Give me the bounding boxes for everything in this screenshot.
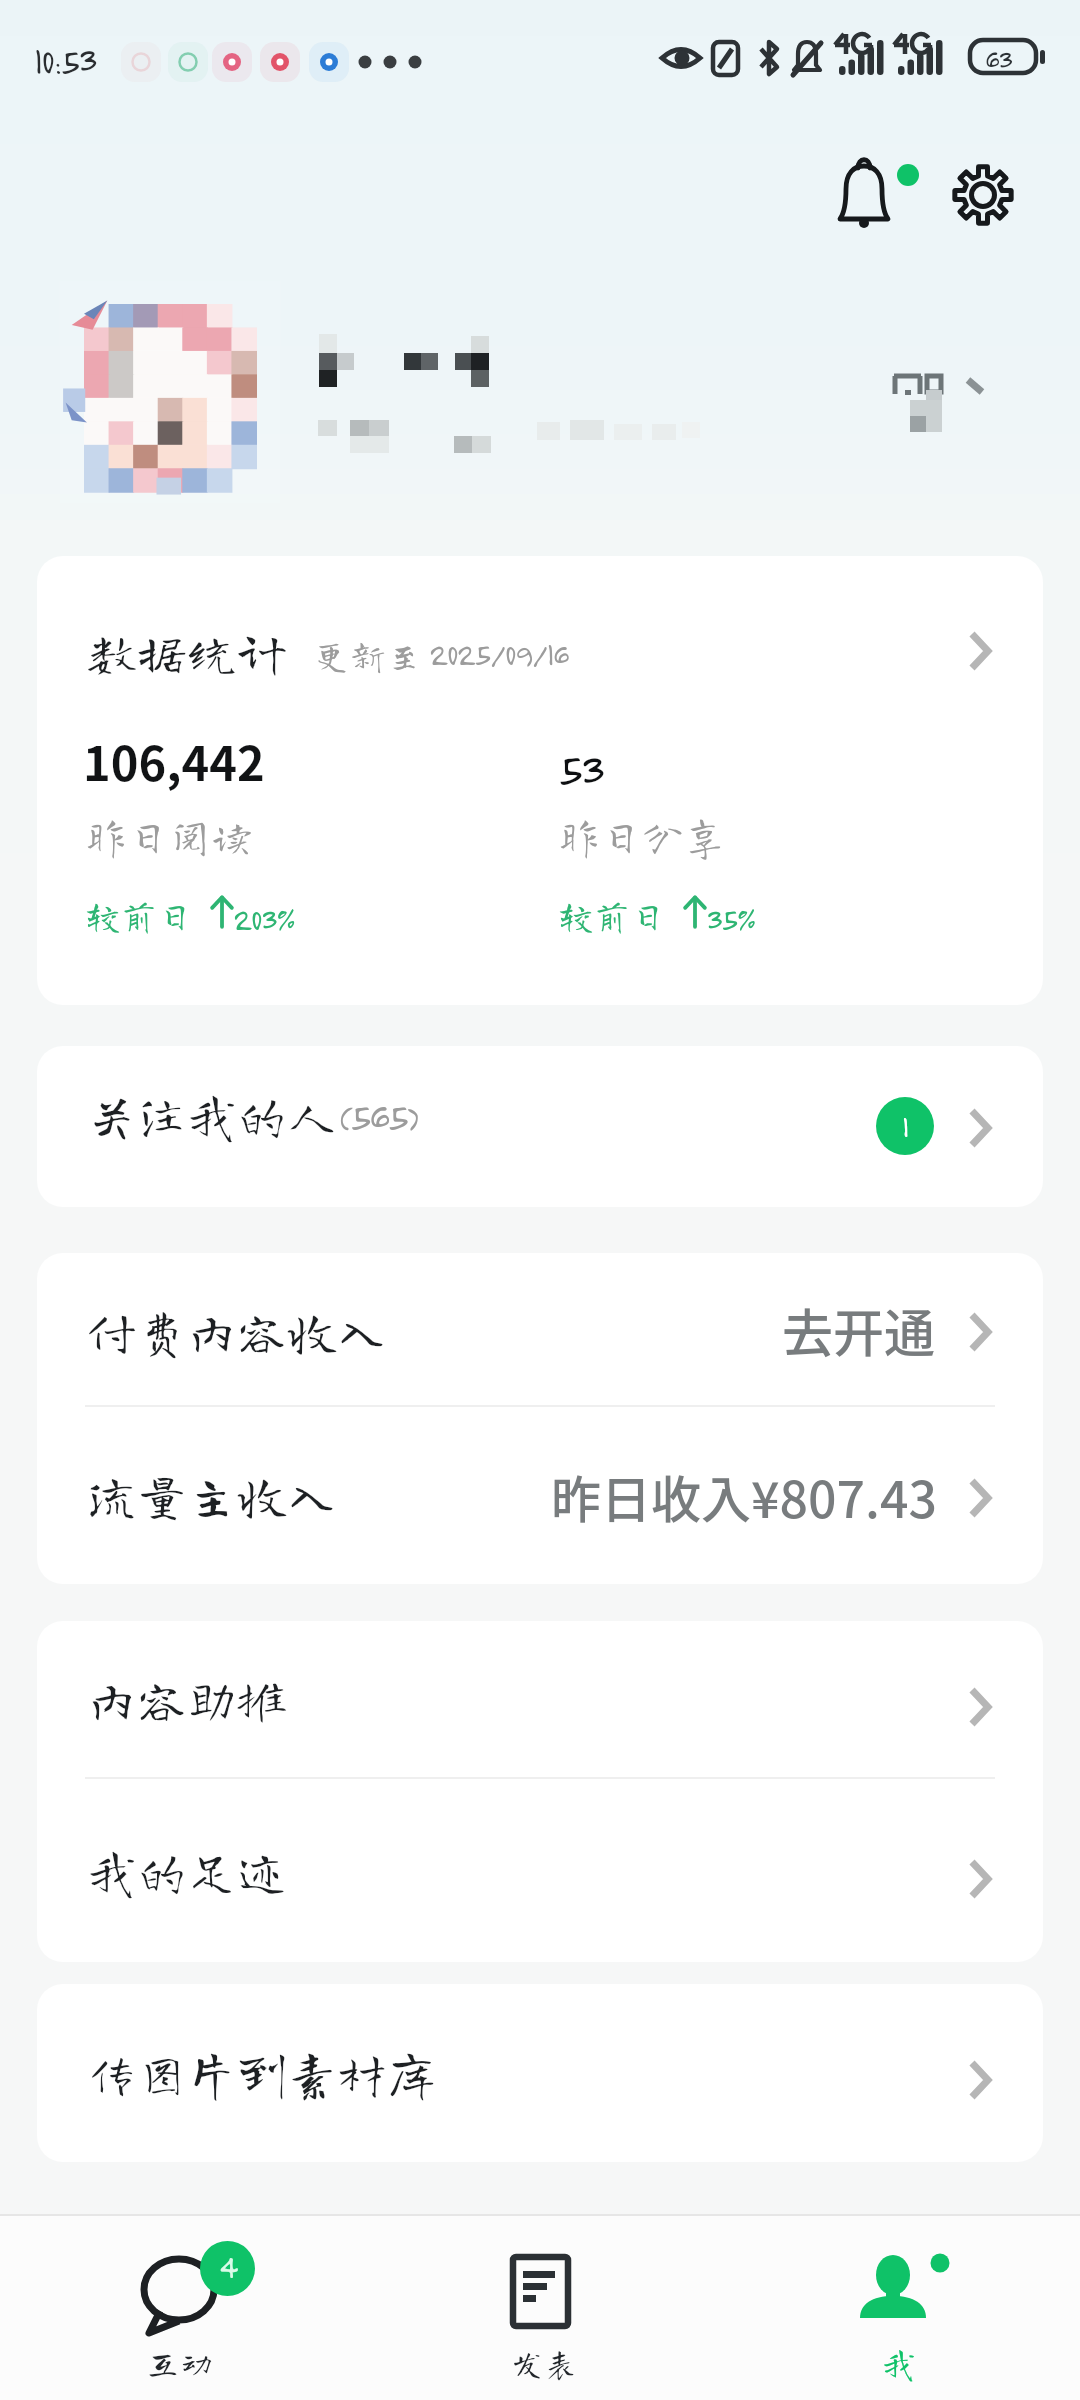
button[interactable]: 关注我的人	[37, 1046, 1043, 1207]
staticText: 发表	[510, 2346, 578, 2380]
staticText: 关注我的人	[87, 1090, 337, 1140]
staticText: 流量主收入	[87, 1470, 337, 1520]
button[interactable]: 付费内容收入	[37, 1253, 1043, 1405]
button[interactable]: 我	[740, 2214, 1060, 2400]
button[interactable]: 流量主收入	[37, 1407, 1043, 1584]
staticText: 付费内容收入	[87, 1306, 387, 1356]
staticText: (565)	[338, 1092, 419, 1140]
staticText: 较前日	[558, 897, 667, 933]
staticText: 更新至	[314, 637, 423, 673]
staticText: 203%	[233, 900, 295, 938]
staticText: 63	[985, 42, 1012, 76]
staticText: 1	[902, 1108, 908, 1144]
staticText: 去开通	[782, 1293, 936, 1367]
button[interactable]: 数据统计	[37, 556, 1043, 1005]
staticText: 35%	[706, 900, 755, 938]
button[interactable]: 4	[20, 2214, 340, 2400]
staticText: 数据统计	[87, 627, 287, 677]
staticText: 内容助推	[87, 1674, 287, 1724]
staticText: 较前日	[85, 897, 194, 933]
button[interactable]: 传图片到素材库	[37, 1984, 1043, 2162]
button[interactable]: 发表	[380, 2214, 700, 2400]
staticText: 106,442	[83, 726, 265, 794]
button[interactable]: Notifications	[816, 146, 912, 242]
button[interactable]	[0, 280, 1080, 500]
staticText: 4	[219, 2247, 236, 2287]
staticText: 互动	[146, 2346, 214, 2380]
button[interactable]: 内容助推	[37, 1621, 1043, 1777]
staticText: 我	[882, 2346, 916, 2380]
staticText: 10:53	[34, 38, 96, 82]
staticText: 昨日收入¥807.43	[551, 1460, 937, 1532]
staticText: 昨日阅读	[85, 815, 254, 857]
staticText: 53	[558, 741, 603, 797]
staticText: 昨日分享	[558, 815, 727, 857]
staticText: 我的足迹	[87, 1846, 287, 1896]
staticText: 传图片到素材库	[87, 2048, 437, 2098]
button[interactable]: 我的足迹	[37, 1779, 1043, 1962]
staticText: 2025/09/16	[429, 635, 568, 673]
button[interactable]: Settings	[935, 147, 1031, 243]
